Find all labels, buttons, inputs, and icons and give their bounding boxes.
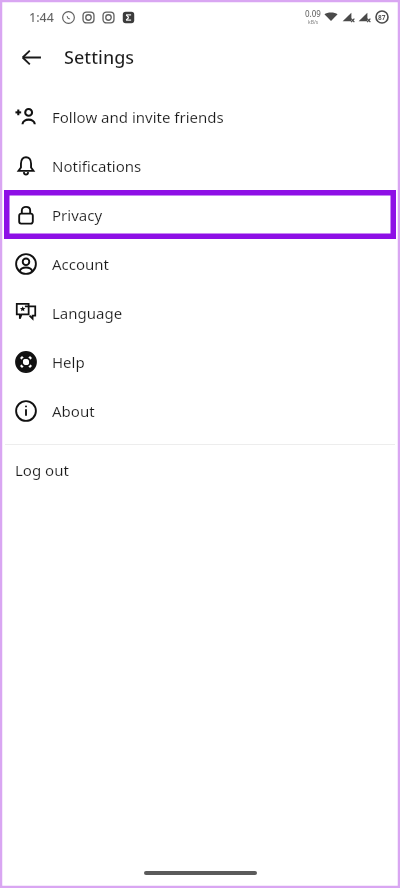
button[interactable]: Help xyxy=(0,337,400,386)
button[interactable]: Language xyxy=(0,288,400,337)
staticText: 0.09 xyxy=(305,8,321,19)
button[interactable]: About xyxy=(0,386,400,435)
staticText: Language xyxy=(52,303,123,323)
button[interactable]: Log out xyxy=(0,445,400,495)
staticText: About xyxy=(52,401,95,421)
staticText: Privacy xyxy=(52,205,103,225)
staticText: 1:44 xyxy=(29,9,54,26)
staticText: 87 xyxy=(378,13,386,22)
staticText: kB/s xyxy=(308,19,319,26)
button[interactable]: Privacy xyxy=(0,190,400,239)
button[interactable]: Account xyxy=(0,239,400,288)
button[interactable]: Back xyxy=(13,39,49,75)
staticText: Help xyxy=(52,352,85,372)
staticText: Log out xyxy=(15,460,69,480)
button[interactable]: Notifications xyxy=(0,141,400,190)
button[interactable]: Follow and invite friends xyxy=(0,92,400,141)
staticText: Notifications xyxy=(52,156,142,176)
staticText: Follow and invite friends xyxy=(52,107,224,127)
staticText: Settings xyxy=(64,45,135,70)
staticText: Account xyxy=(52,254,110,274)
